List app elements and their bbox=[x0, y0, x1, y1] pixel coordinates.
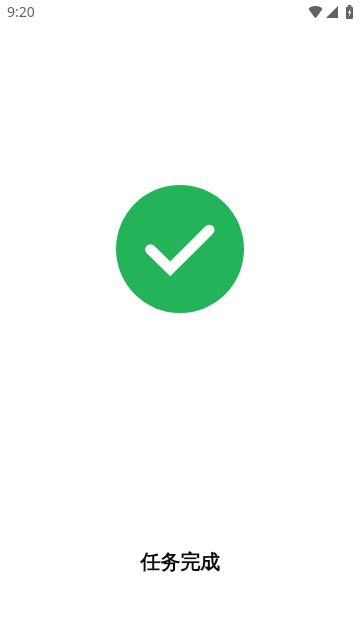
other: Wi-Fi bbox=[308, 6, 323, 18]
staticText: 任务完成 bbox=[140, 550, 220, 575]
other: Mobile signal bbox=[326, 6, 338, 18]
other: Battery charging bbox=[346, 5, 353, 19]
staticText: 9:20 bbox=[7, 2, 35, 21]
other: Task completed bbox=[116, 185, 244, 313]
